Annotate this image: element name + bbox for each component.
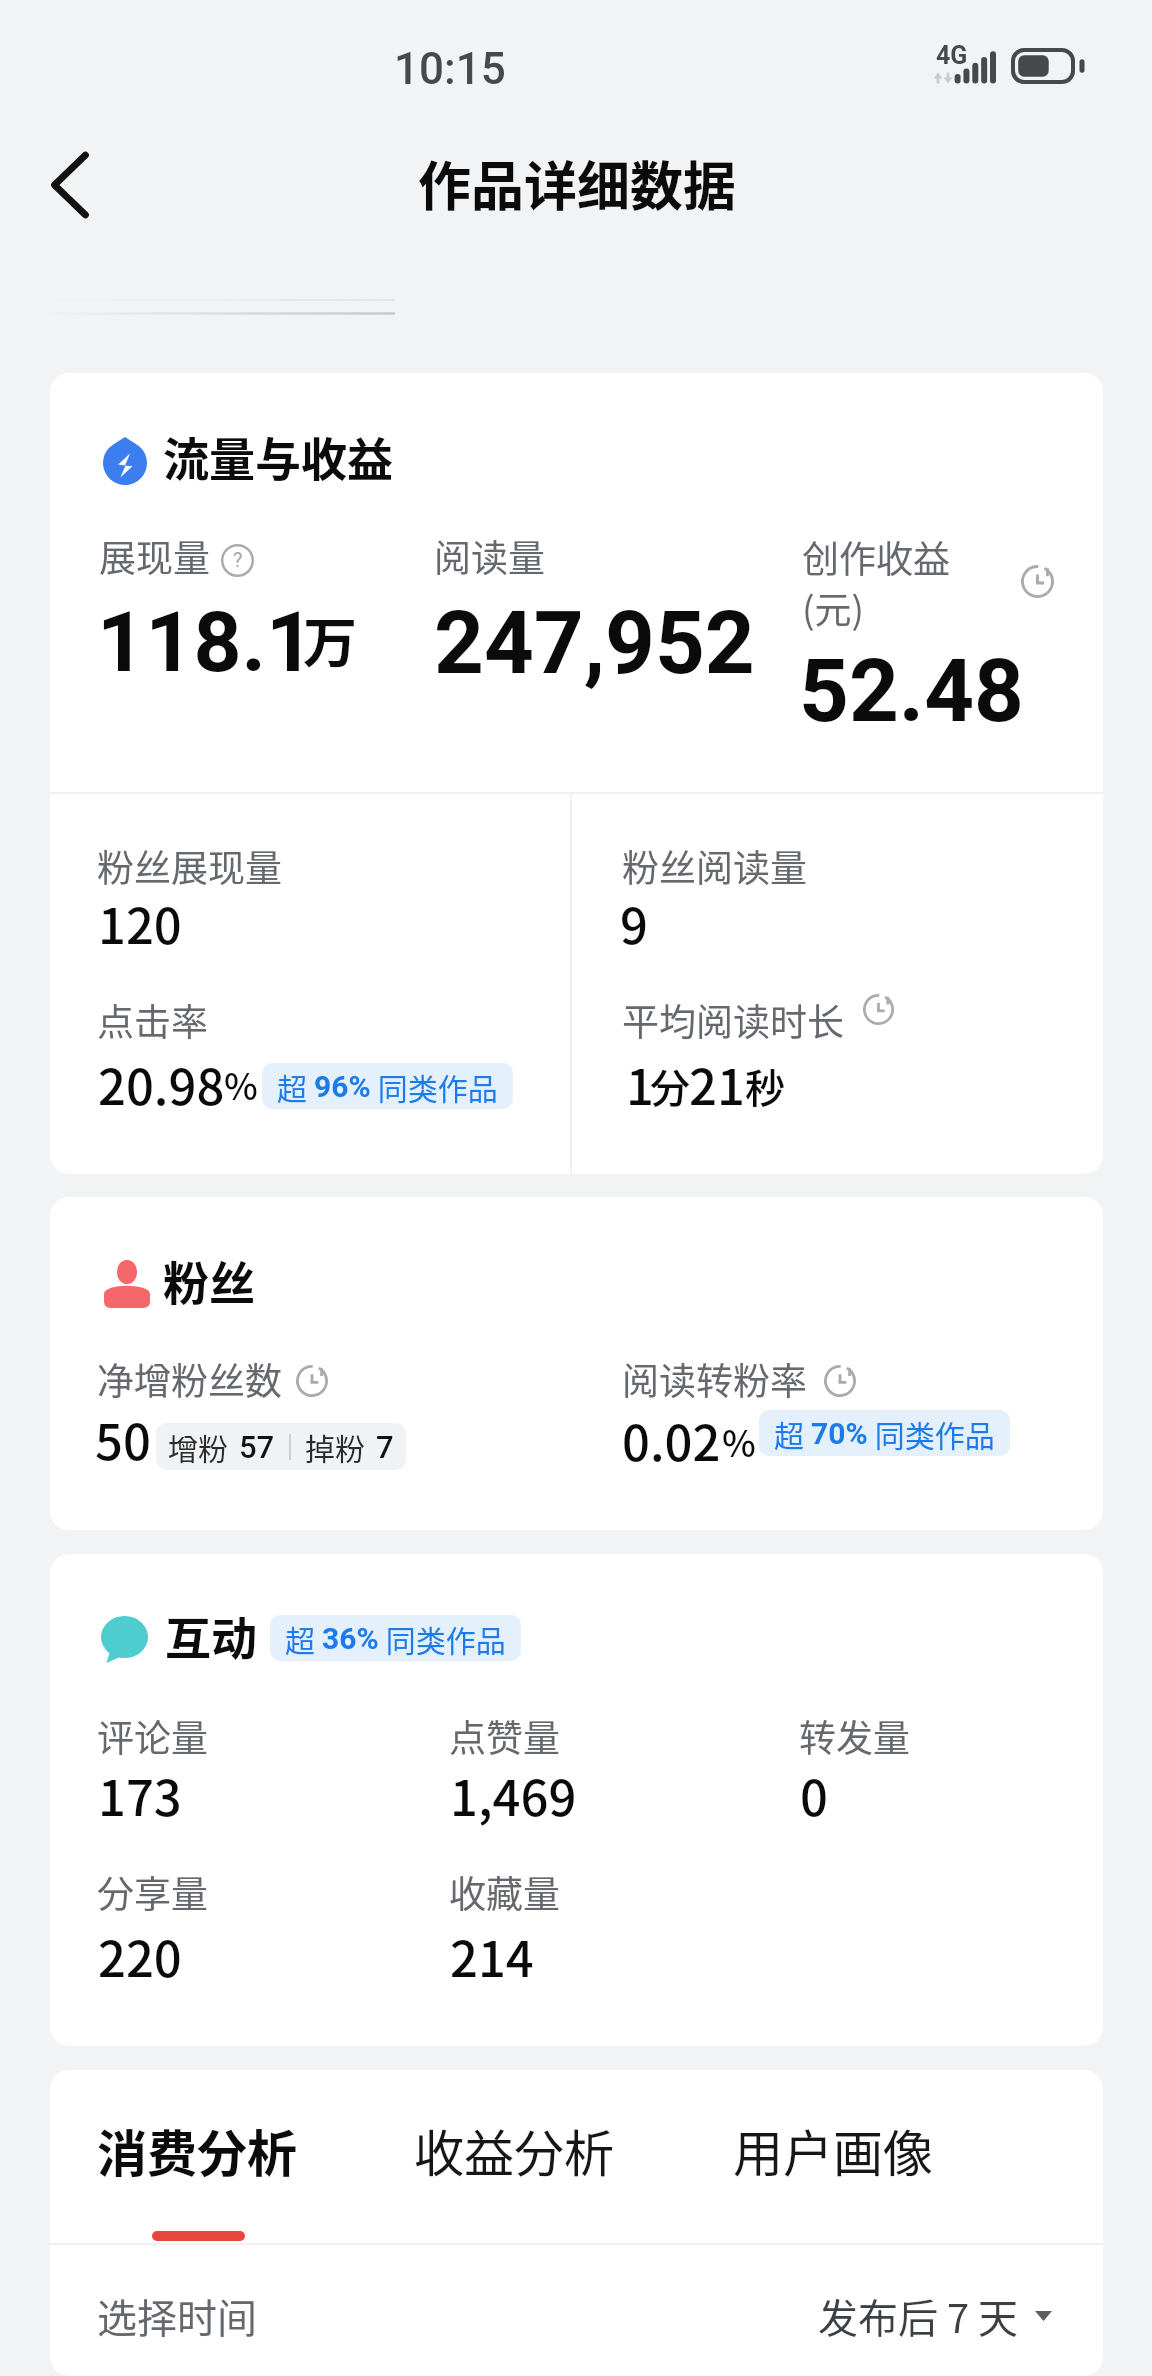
staticText: 21 <box>689 1048 745 1119</box>
staticText: 70% <box>811 1416 868 1451</box>
staticText: 创作收益 (元) <box>802 530 950 635</box>
staticText: 展现量 <box>99 529 210 583</box>
staticText: 超 <box>774 1412 811 1455</box>
staticText: % <box>224 1058 258 1110</box>
staticText: 秒 <box>745 1057 785 1115</box>
staticText: 阅读转粉率 <box>622 1352 807 1406</box>
staticText: 10:15 <box>394 43 506 95</box>
staticText: 点击率 <box>97 993 208 1047</box>
staticText: 平均阅读时长 <box>622 993 844 1047</box>
staticText: 粉丝展现量 <box>97 839 282 893</box>
staticText: 9 <box>620 887 648 958</box>
staticText: 用户画像 <box>733 2114 933 2186</box>
staticText: 同类作品 <box>371 1065 498 1108</box>
staticText: 互动 <box>165 1602 257 1669</box>
staticText: 分享量 <box>97 1865 208 1919</box>
staticText: 96% <box>314 1069 371 1104</box>
staticText: 20.98 <box>98 1048 225 1119</box>
button[interactable]: 收益分析 <box>407 2108 621 2192</box>
staticText: 同类作品 <box>868 1412 995 1455</box>
staticText: 流量与收益 <box>163 423 393 490</box>
staticText: 120 <box>98 887 182 958</box>
staticText: 1,469 <box>450 1759 577 1830</box>
staticText: 4G <box>936 41 968 70</box>
staticText: 评论量 <box>97 1709 208 1763</box>
staticText: 万 <box>303 600 357 678</box>
staticText: 掉粉 <box>305 1425 365 1468</box>
staticText: 发布后 7 天 <box>818 2287 1019 2345</box>
staticText: 分 <box>650 1057 690 1115</box>
staticText: 36% <box>322 1621 379 1656</box>
staticText: 1 <box>626 1048 654 1119</box>
staticText: % <box>722 1415 756 1467</box>
staticText: 增粉 <box>168 1425 228 1468</box>
staticText: 同类作品 <box>379 1617 506 1660</box>
staticText: 净增粉丝数 <box>97 1352 282 1406</box>
staticText: 214 <box>450 1920 534 1991</box>
staticText: 作品详细数据 <box>418 145 736 222</box>
staticText: 消费分析 <box>97 2114 297 2186</box>
staticText: 超 <box>285 1617 322 1660</box>
staticText: 转发量 <box>799 1709 910 1763</box>
staticText: 118.1 <box>97 593 315 691</box>
staticText: 点赞量 <box>449 1709 560 1763</box>
staticText: 选择时间 <box>97 2287 257 2345</box>
staticText: 247,952 <box>434 592 755 694</box>
staticText: 57 <box>239 1429 275 1465</box>
staticText: 粉丝 <box>163 1247 255 1314</box>
button[interactable]: 消费分析 <box>90 2108 304 2192</box>
staticText: 50 <box>95 1403 151 1474</box>
staticText: 阅读量 <box>434 529 545 583</box>
staticText: 52.48 <box>799 640 1024 742</box>
staticText: ? <box>233 548 243 571</box>
staticText: 7 <box>376 1429 394 1465</box>
staticText: 收藏量 <box>449 1865 560 1919</box>
button[interactable]: 用户画像 <box>726 2108 940 2192</box>
button[interactable]: 发布后 7 天 <box>818 2287 1052 2345</box>
staticText: 0.02 <box>622 1404 721 1475</box>
staticText: 收益分析 <box>414 2114 614 2186</box>
staticText: 220 <box>98 1920 182 1991</box>
staticText: 超 <box>277 1065 314 1108</box>
staticText: 173 <box>98 1759 182 1830</box>
staticText: 0 <box>800 1759 828 1830</box>
button[interactable]: Back <box>18 133 122 237</box>
staticText: 粉丝阅读量 <box>622 839 807 893</box>
